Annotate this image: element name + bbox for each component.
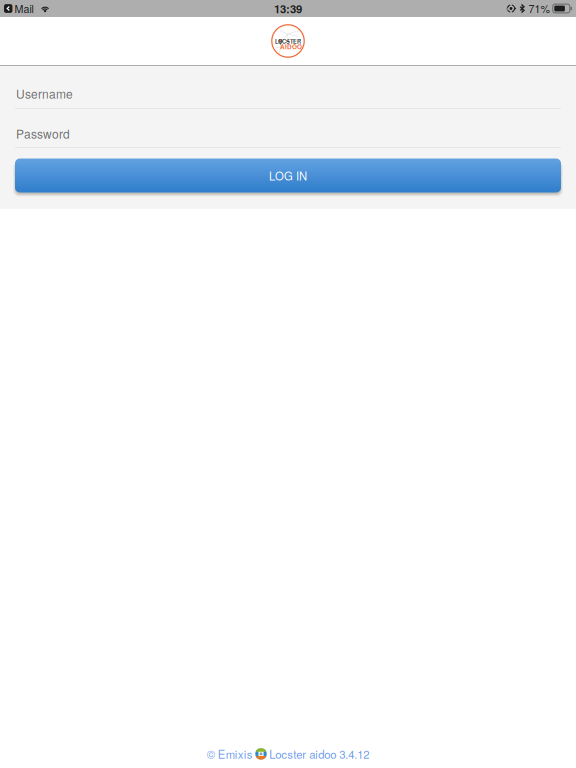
staticText: 71% xyxy=(528,1,549,16)
staticText: LOCSTER xyxy=(275,37,301,45)
button[interactable]: Username xyxy=(0,66,576,108)
button[interactable]: LOG IN xyxy=(0,157,576,194)
staticText: © Emixis xyxy=(207,746,253,762)
staticText: Mail xyxy=(15,1,34,16)
staticText: Locster aidoo 3.4.12 xyxy=(269,746,369,762)
staticText: 13:39 xyxy=(274,0,302,17)
button[interactable]: © Emixis xyxy=(207,744,369,764)
staticText: Password xyxy=(16,125,70,142)
staticText: AIDOO xyxy=(280,42,302,51)
staticText: Username xyxy=(16,85,73,102)
staticText: LOG IN xyxy=(269,167,307,184)
button[interactable]: Back to Mail xyxy=(0,0,34,18)
button[interactable]: Password xyxy=(0,109,576,147)
